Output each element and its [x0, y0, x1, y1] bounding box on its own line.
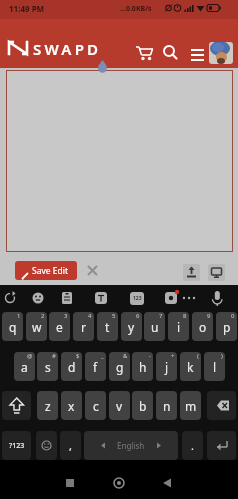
- button[interactable]: [209, 42, 233, 64]
- staticText: 6: [136, 312, 140, 320]
- staticText: -: [149, 352, 151, 360]
- staticText: l: [213, 359, 217, 375]
- staticText: r: [81, 319, 86, 335]
- staticText: k: [187, 359, 194, 375]
- button[interactable]: r: [73, 312, 94, 341]
- staticText: q: [9, 319, 17, 335]
- button[interactable]: [183, 264, 200, 281]
- staticText: 2: [41, 312, 45, 320]
- button[interactable]: i: [168, 312, 189, 341]
- button[interactable]: t: [97, 312, 118, 341]
- button[interactable]: o: [192, 312, 213, 341]
- staticText: d: [68, 359, 76, 375]
- button[interactable]: [159, 42, 183, 68]
- button[interactable]: [207, 431, 236, 460]
- staticText: 4: [88, 312, 92, 320]
- button[interactable]: k: [180, 352, 201, 381]
- staticText: 5: [112, 312, 116, 320]
- button[interactable]: d: [61, 352, 82, 381]
- button[interactable]: [52, 466, 82, 494]
- button[interactable]: n: [156, 391, 177, 420]
- staticText: g: [116, 359, 124, 375]
- staticText: o: [199, 319, 207, 335]
- button[interactable]: u: [144, 312, 165, 341]
- staticText: #: [52, 352, 56, 360]
- button[interactable]: [130, 42, 158, 68]
- staticText: Save Edit: [32, 265, 68, 277]
- button[interactable]: w: [26, 312, 47, 341]
- staticText: j: [165, 359, 169, 375]
- staticText: +: [171, 352, 175, 360]
- button[interactable]: Save Edit: [15, 261, 77, 280]
- staticText: f: [93, 359, 98, 375]
- staticText: 123: [133, 295, 142, 302]
- staticText: 8: [183, 312, 187, 320]
- button[interactable]: [207, 391, 236, 420]
- staticText: English: [117, 440, 145, 451]
- staticText: $: [76, 352, 80, 360]
- staticText: b: [139, 398, 147, 414]
- button[interactable]: g: [109, 352, 130, 381]
- button[interactable]: [2, 391, 31, 420]
- button[interactable]: [36, 431, 57, 460]
- button[interactable]: 123: [130, 292, 144, 305]
- staticText: n: [163, 398, 171, 414]
- button[interactable]: l: [204, 352, 225, 381]
- staticText: y: [128, 319, 135, 335]
- staticText: w: [32, 319, 42, 335]
- button[interactable]: b: [132, 391, 153, 420]
- staticText: _: [101, 352, 104, 360]
- button[interactable]: ?123: [2, 431, 31, 460]
- staticText: p: [223, 319, 231, 335]
- staticText: 3: [64, 312, 68, 320]
- staticText: 7: [159, 312, 163, 320]
- button[interactable]: [208, 264, 225, 281]
- button[interactable]: e: [49, 312, 70, 341]
- button[interactable]: x: [61, 391, 82, 420]
- button[interactable]: q: [2, 312, 23, 341]
- button[interactable]: English: [84, 431, 178, 460]
- button[interactable]: .: [182, 431, 203, 460]
- button[interactable]: [104, 466, 134, 494]
- button[interactable]: ,: [60, 431, 81, 460]
- button[interactable]: z: [37, 391, 58, 420]
- staticText: x: [68, 398, 75, 414]
- staticText: t: [105, 319, 110, 335]
- staticText: 0: [231, 312, 235, 320]
- button[interactable]: c: [85, 391, 106, 420]
- button[interactable]: [152, 466, 182, 494]
- staticText: h: [139, 359, 147, 375]
- button[interactable]: v: [109, 391, 130, 420]
- button[interactable]: j: [156, 352, 177, 381]
- staticText: c: [93, 398, 99, 414]
- staticText: &: [123, 352, 128, 360]
- button[interactable]: p: [216, 312, 237, 341]
- staticText: ?123: [9, 441, 25, 451]
- staticText: .: [191, 438, 194, 453]
- staticText: i: [177, 319, 181, 335]
- button[interactable]: [188, 42, 210, 68]
- staticText: s: [45, 359, 51, 375]
- button[interactable]: y: [121, 312, 142, 341]
- staticText: @: [27, 352, 33, 360]
- staticText: ...0.0KB/s: [120, 4, 152, 14]
- staticText: 11:49 PM: [9, 3, 45, 14]
- staticText: 9: [207, 312, 211, 320]
- staticText: m: [185, 398, 197, 414]
- staticText: ,: [69, 438, 72, 453]
- staticText: (: [197, 352, 199, 360]
- staticText: 1: [17, 312, 21, 320]
- button[interactable]: a: [14, 352, 35, 381]
- staticText: e: [56, 319, 63, 335]
- button[interactable]: f: [85, 352, 106, 381]
- staticText: ): [221, 352, 223, 360]
- button[interactable]: [84, 262, 101, 279]
- staticText: u: [151, 319, 159, 335]
- staticText: v: [116, 398, 123, 414]
- button[interactable]: m: [180, 391, 201, 420]
- button[interactable]: SWAPD: [33, 39, 102, 59]
- button[interactable]: s: [37, 352, 58, 381]
- button[interactable]: h: [132, 352, 153, 381]
- staticText: a: [21, 359, 28, 375]
- staticText: z: [45, 398, 51, 414]
